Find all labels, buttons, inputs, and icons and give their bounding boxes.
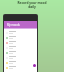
- button[interactable]: [4, 50, 37, 55]
- button[interactable]: [4, 55, 37, 60]
- button[interactable]: [4, 60, 37, 65]
- button[interactable]: [4, 65, 37, 70]
- staticText: Record your mood: [17, 1, 47, 5]
- button[interactable]: [4, 30, 37, 35]
- button[interactable]: [4, 45, 37, 50]
- staticText: daily: [28, 5, 36, 9]
- staticText: My moods: [7, 23, 20, 27]
- button[interactable]: Add mood entry: [33, 64, 36, 67]
- button[interactable]: [4, 40, 37, 45]
- button[interactable]: [4, 35, 37, 40]
- button[interactable]: My moods: [4, 21, 37, 28]
